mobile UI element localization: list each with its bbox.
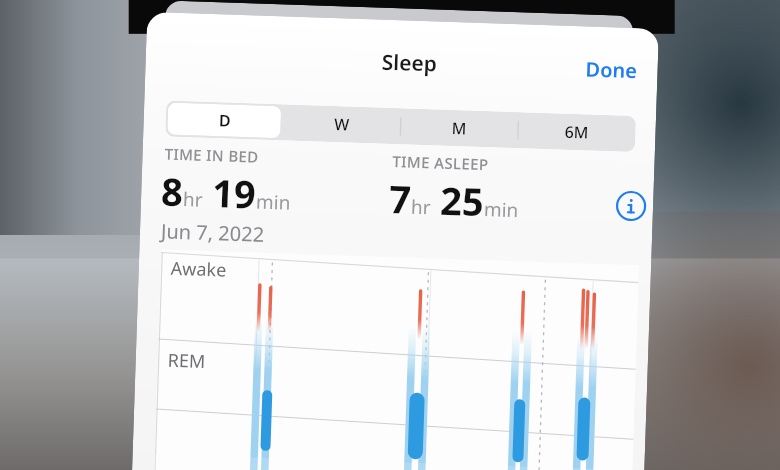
button[interactable]: Sleep <box>375 45 444 81</box>
staticText: Jun 7, 2022 <box>161 217 265 248</box>
staticText: hr <box>183 186 203 213</box>
staticText: W <box>333 113 350 136</box>
staticText: Sleep <box>381 48 438 78</box>
button[interactable]: D <box>167 103 281 138</box>
staticText: hr <box>410 194 431 220</box>
staticText: min <box>256 188 291 216</box>
staticText: 6M <box>564 121 589 143</box>
staticText: 19 <box>211 166 257 219</box>
staticText: Awake <box>170 256 227 283</box>
staticText: M <box>451 117 467 139</box>
button[interactable]: W <box>284 106 398 142</box>
button[interactable]: 6M <box>519 114 634 150</box>
staticText: TIME IN BED <box>164 143 260 167</box>
staticText: 25 <box>439 174 485 227</box>
button[interactable]: M <box>401 110 516 146</box>
staticText: TIME ASLEEP <box>392 151 490 174</box>
staticText: D <box>218 109 231 132</box>
staticText: REM <box>167 348 206 374</box>
button[interactable]: Done <box>577 52 646 87</box>
staticText: 7 <box>388 172 412 225</box>
staticText: Done <box>585 55 638 84</box>
staticText: 8 <box>160 164 184 217</box>
button[interactable]: About sleep data <box>612 187 650 225</box>
staticText: min <box>483 196 519 223</box>
